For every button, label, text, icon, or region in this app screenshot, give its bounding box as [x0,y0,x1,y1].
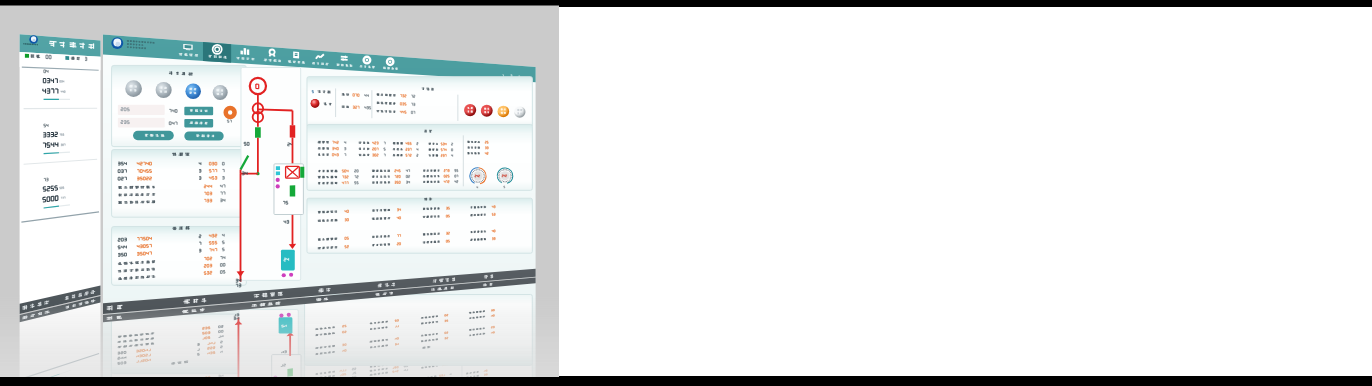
button[interactable]: Mode: auto [156,83,172,97]
button[interactable]: Device management [260,46,284,66]
button[interactable]: Mode: manual [125,82,142,96]
button[interactable]: Apply settings [133,131,174,140]
button[interactable]: System settings [356,54,378,73]
button[interactable]: Refresh [226,109,235,117]
button[interactable]: Single line diagram [241,68,301,285]
button[interactable]: Mode: local [213,86,228,99]
button[interactable]: Warning reset [498,105,510,117]
button[interactable]: PCS data panel [307,124,532,194]
button[interactable]: Help [380,55,401,73]
button[interactable]: Event log [284,48,308,68]
button[interactable]: Taskbar [103,269,536,314]
button[interactable]: Close [517,73,522,78]
button[interactable]: Set active power [184,107,213,116]
button[interactable]: Standby [514,106,525,118]
button[interactable]: Grid side measurements card [112,150,247,222]
button[interactable]: Control panel card [112,65,247,146]
button[interactable]: Operating status [204,42,230,63]
button[interactable]: Minimise [501,72,507,77]
button[interactable]: Statistics report [232,44,257,64]
button[interactable]: Set reactive power [184,119,213,127]
button[interactable]: Trip breaker [481,105,493,117]
button[interactable]: Unit status panel [307,77,532,127]
button[interactable]: Real-time monitoring [174,40,201,61]
button[interactable]: Emergency stop [464,104,476,117]
button[interactable]: Trend curves [308,50,331,69]
button[interactable]: Reset settings [184,131,223,140]
button[interactable]: Machine side measurements card [112,222,247,296]
button[interactable]: Mode: remote [185,85,201,98]
button[interactable]: Real-time monitoring [0,0,1372,386]
button[interactable]: Maximise [509,72,514,78]
button[interactable]: Battery data panel [307,193,532,268]
button[interactable]: Alarm query [333,52,355,71]
